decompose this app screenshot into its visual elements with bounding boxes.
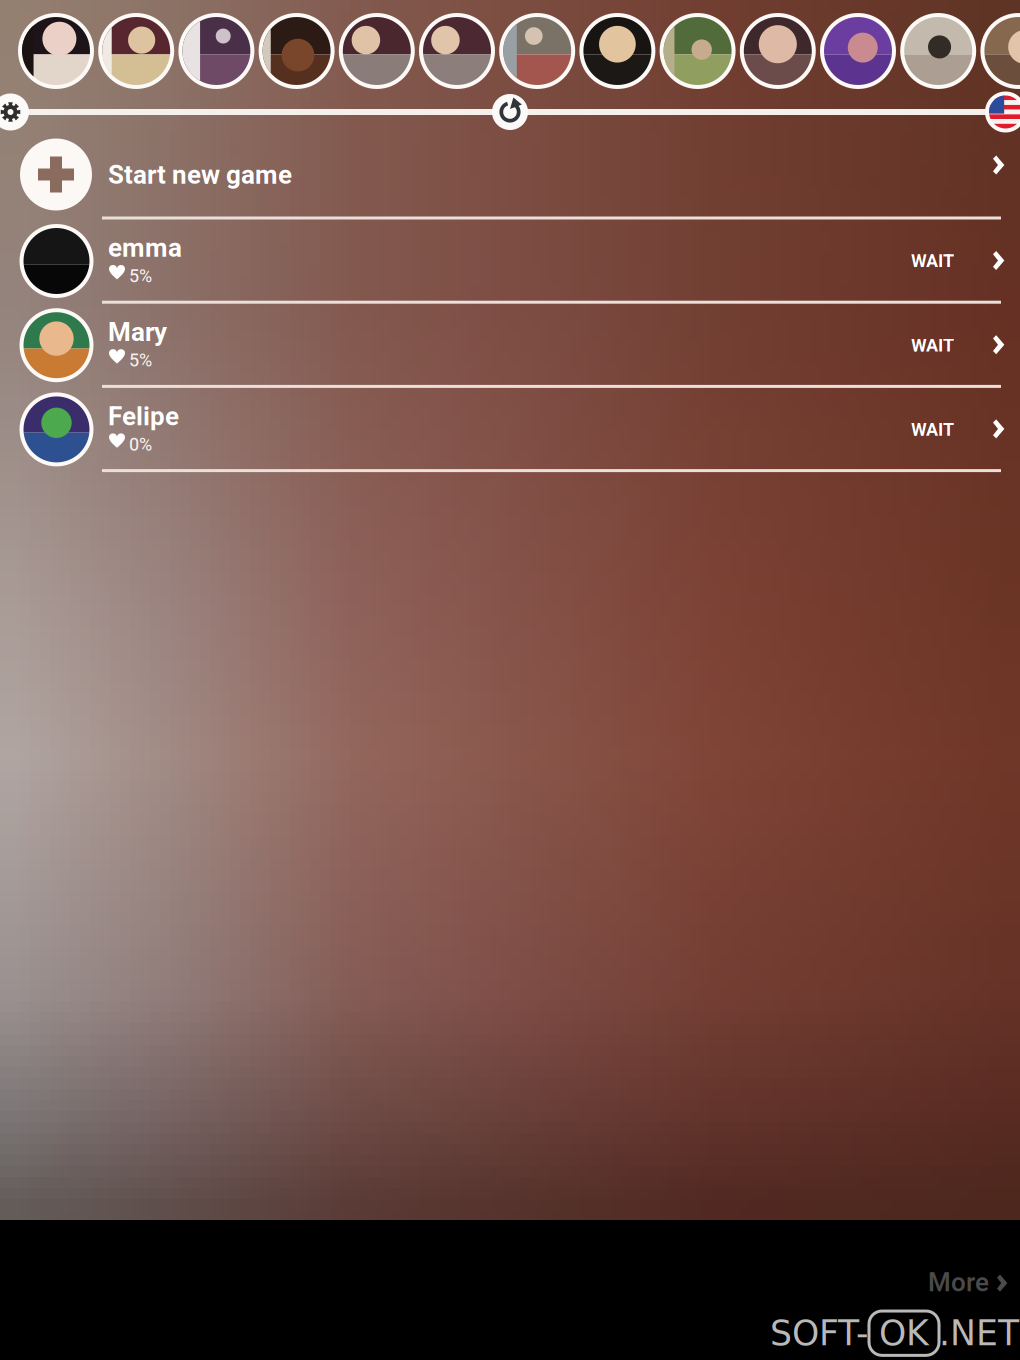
staticText: .NET: [939, 1313, 1019, 1353]
staticText: WAIT: [911, 417, 954, 443]
staticText: emma: [108, 229, 182, 268]
staticText: WAIT: [911, 333, 954, 359]
button[interactable]: Start new game: [0, 132, 1020, 216]
button[interactable]: Region: [985, 91, 1020, 132]
staticText: 5%: [129, 348, 152, 374]
staticText: SOFT-: [770, 1313, 869, 1353]
button[interactable]: Settings: [0, 93, 29, 130]
button[interactable]: Mary: [0, 301, 1020, 385]
staticText: Felipe: [108, 398, 179, 436]
staticText: 0%: [129, 432, 152, 458]
button[interactable]: emma: [0, 216, 1020, 301]
staticText: OK: [879, 1313, 929, 1353]
staticText: Start new game: [108, 156, 292, 195]
button[interactable]: More: [914, 1254, 1020, 1312]
button[interactable]: Refresh: [492, 94, 528, 130]
staticText: 5%: [129, 263, 152, 290]
staticText: Mary: [108, 314, 167, 352]
button[interactable]: Felipe: [0, 385, 1020, 469]
staticText: WAIT: [911, 248, 954, 275]
staticText: More: [928, 1264, 989, 1302]
